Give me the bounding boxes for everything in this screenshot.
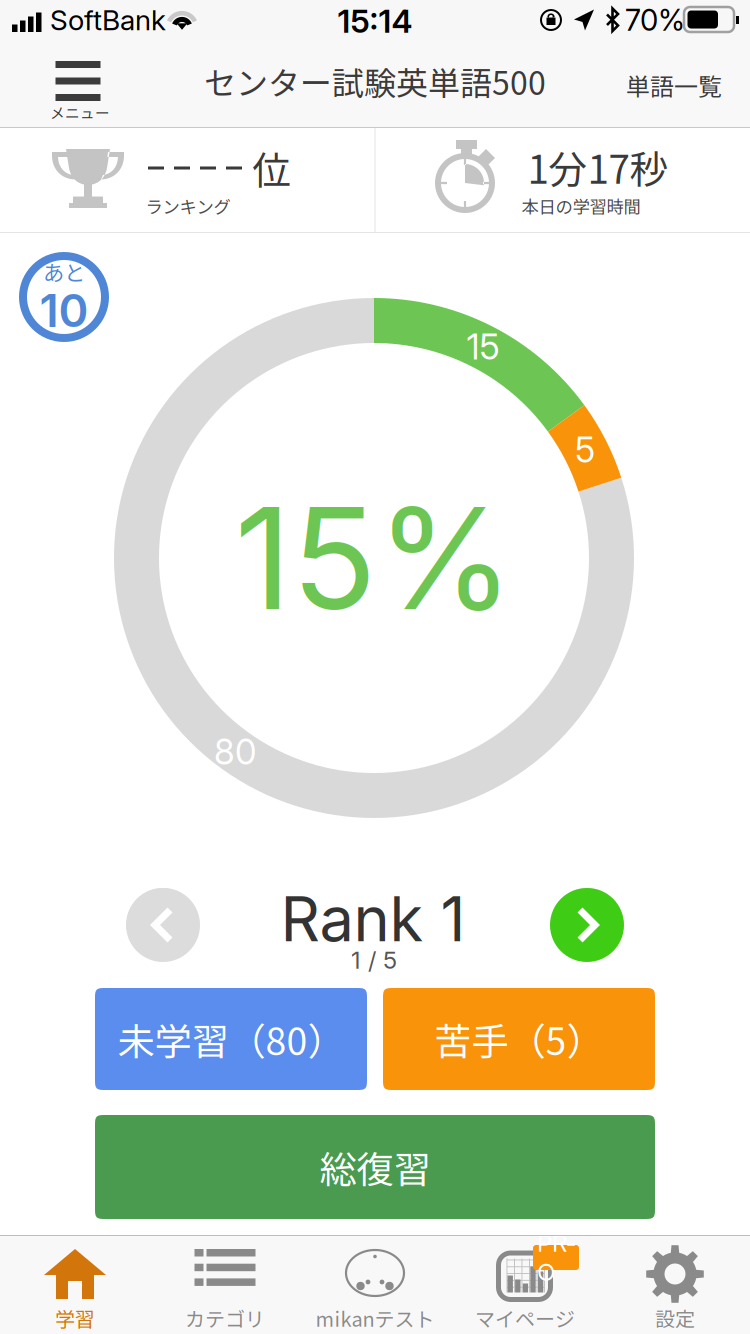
staticText: 学習: [55, 1303, 95, 1332]
staticText: メニュー: [50, 101, 110, 123]
staticText: mikanテスト: [315, 1303, 434, 1332]
staticText: センター試験英単語500: [204, 58, 546, 104]
staticText: 70%: [625, 2, 685, 38]
staticText: 未学習（80）: [117, 1012, 344, 1066]
staticText: 位: [252, 140, 291, 196]
staticText: 1分17秒: [527, 139, 668, 195]
staticText: 総復習: [319, 1140, 430, 1194]
staticText: カテゴリ: [185, 1303, 265, 1332]
button[interactable]: 設定: [600, 1235, 750, 1334]
staticText: 15%: [234, 473, 513, 643]
staticText: ランキング: [145, 193, 230, 219]
staticText: 単語一覧: [626, 68, 722, 102]
staticText: 1 / 5: [351, 945, 397, 974]
staticText: 15: [466, 326, 499, 368]
button[interactable]: PRO: [450, 1235, 600, 1334]
staticText: 本日の学習時間: [521, 193, 640, 219]
staticText: マイページ: [475, 1303, 575, 1332]
button[interactable]: 次のランク: [550, 888, 624, 962]
button[interactable]: カテゴリ: [150, 1235, 300, 1334]
button[interactable]: 苦手（5）: [383, 988, 655, 1090]
staticText: 15:14: [337, 2, 412, 40]
staticText: PRO: [537, 1228, 575, 1287]
staticText: 設定: [655, 1303, 695, 1332]
staticText: Rank 1: [280, 882, 465, 956]
staticText: 苦手（5）: [434, 1012, 603, 1066]
staticText: あと: [43, 256, 85, 287]
button[interactable]: 学習: [0, 1235, 150, 1334]
staticText: 5: [575, 429, 595, 471]
button[interactable]: 前のランク: [126, 888, 200, 962]
button[interactable]: 未学習（80）: [95, 988, 367, 1090]
button[interactable]: メニュー: [16, 40, 136, 128]
staticText: SoftBank: [50, 3, 166, 37]
button[interactable]: 単語一覧: [599, 45, 749, 125]
staticText: 80: [214, 731, 256, 773]
button[interactable]: 総復習: [95, 1115, 655, 1219]
staticText: 10: [39, 283, 88, 338]
button[interactable]: mikanテスト: [300, 1235, 450, 1334]
